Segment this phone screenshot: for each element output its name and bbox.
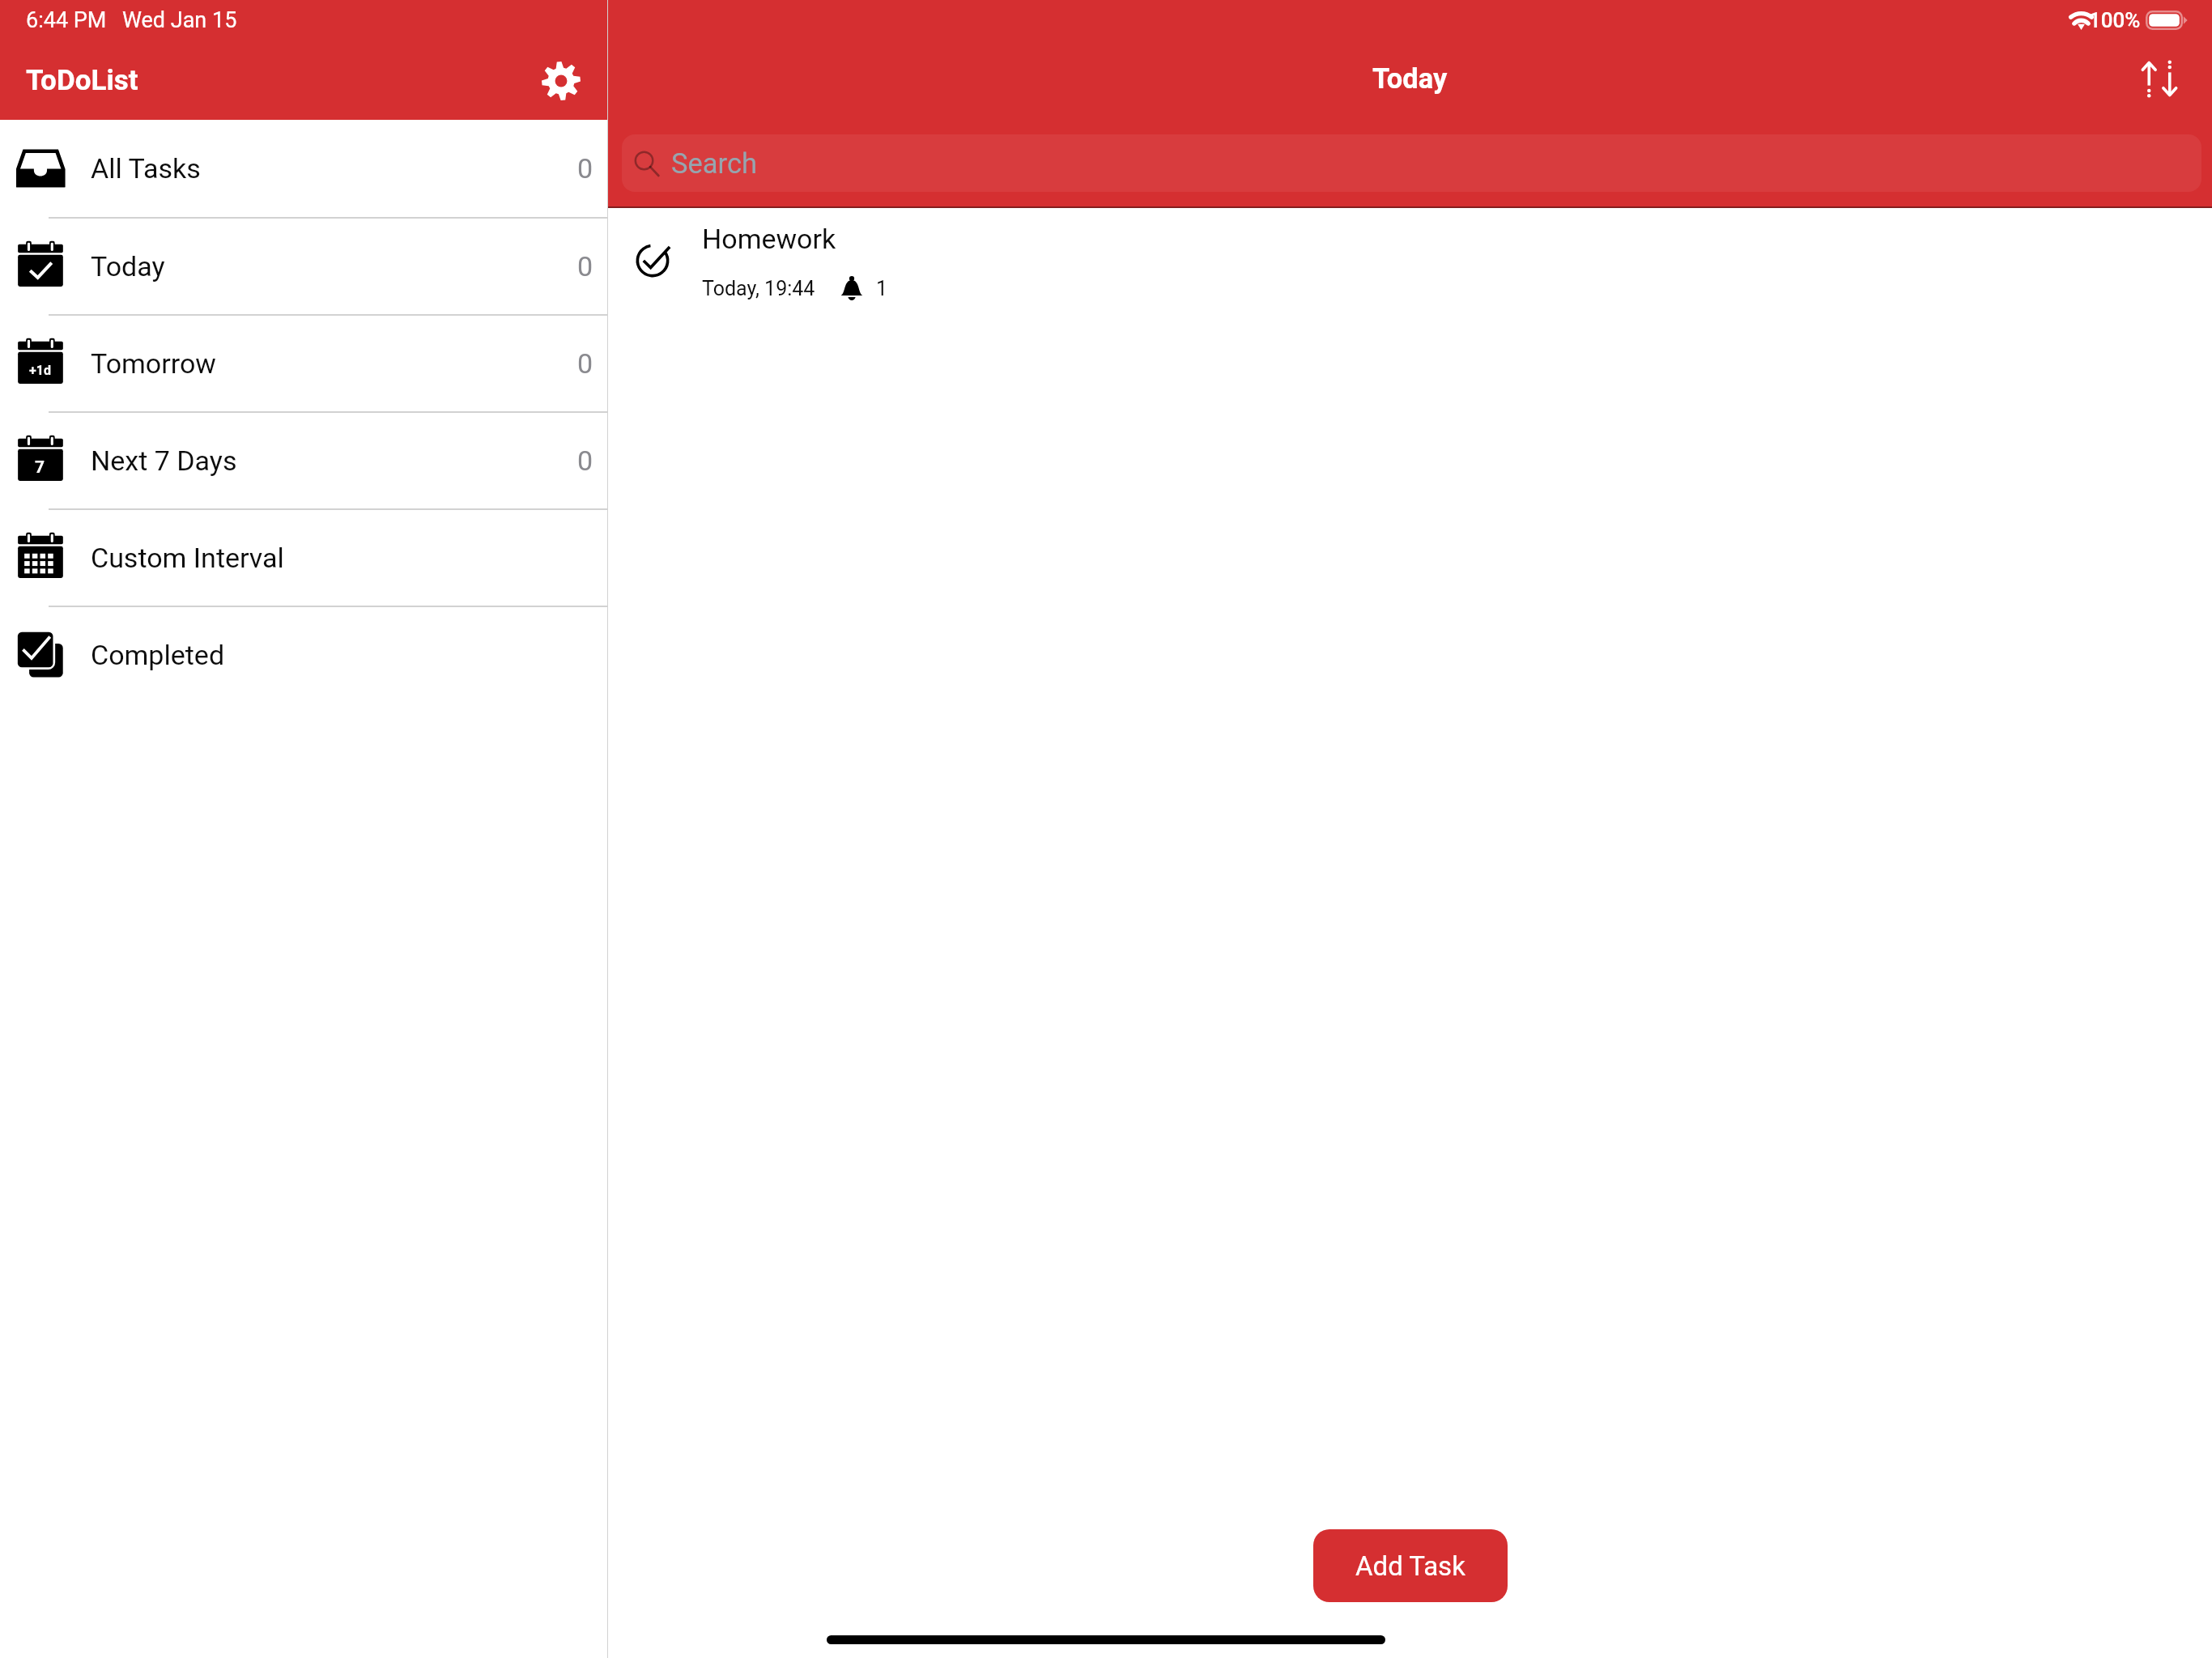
button[interactable]: Sort order <box>2130 49 2189 108</box>
staticText: 100% <box>2089 8 2141 32</box>
staticText: Wed Jan 15 <box>122 7 237 33</box>
button[interactable]: Today <box>0 219 607 314</box>
staticText: Today, 19:44 <box>702 277 815 300</box>
staticText: Homework <box>702 223 836 255</box>
button[interactable]: 7 <box>0 413 607 508</box>
button[interactable]: Homework <box>608 208 2212 312</box>
staticText: +1d <box>29 363 51 378</box>
staticText: All Tasks <box>91 152 201 185</box>
staticText: 0 <box>577 444 593 477</box>
staticText: Next 7 Days <box>91 444 237 477</box>
staticText: 0 <box>577 152 593 185</box>
button[interactable]: Custom Interval <box>0 510 607 606</box>
button[interactable]: Search <box>622 134 2201 192</box>
button[interactable]: Completed <box>0 607 607 703</box>
staticText: 7 <box>35 457 45 478</box>
button[interactable]: Add Task <box>1313 1529 1508 1602</box>
button[interactable]: Settings <box>529 49 593 113</box>
staticText: Today <box>1372 62 1448 95</box>
staticText: Search <box>671 147 757 180</box>
button[interactable]: +1d <box>0 316 607 411</box>
button[interactable]: All Tasks <box>0 120 607 217</box>
staticText: Completed <box>91 639 225 671</box>
staticText: Add Task <box>1355 1550 1465 1582</box>
staticText: Custom Interval <box>91 542 284 574</box>
staticText: 0 <box>577 347 593 380</box>
staticText: Tomorrow <box>91 347 216 380</box>
staticText: 1 <box>876 277 888 300</box>
staticText: Today <box>91 250 165 283</box>
staticText: 0 <box>577 250 593 283</box>
staticText: ToDoList <box>26 64 138 97</box>
staticText: 6:44 PM <box>26 7 107 33</box>
